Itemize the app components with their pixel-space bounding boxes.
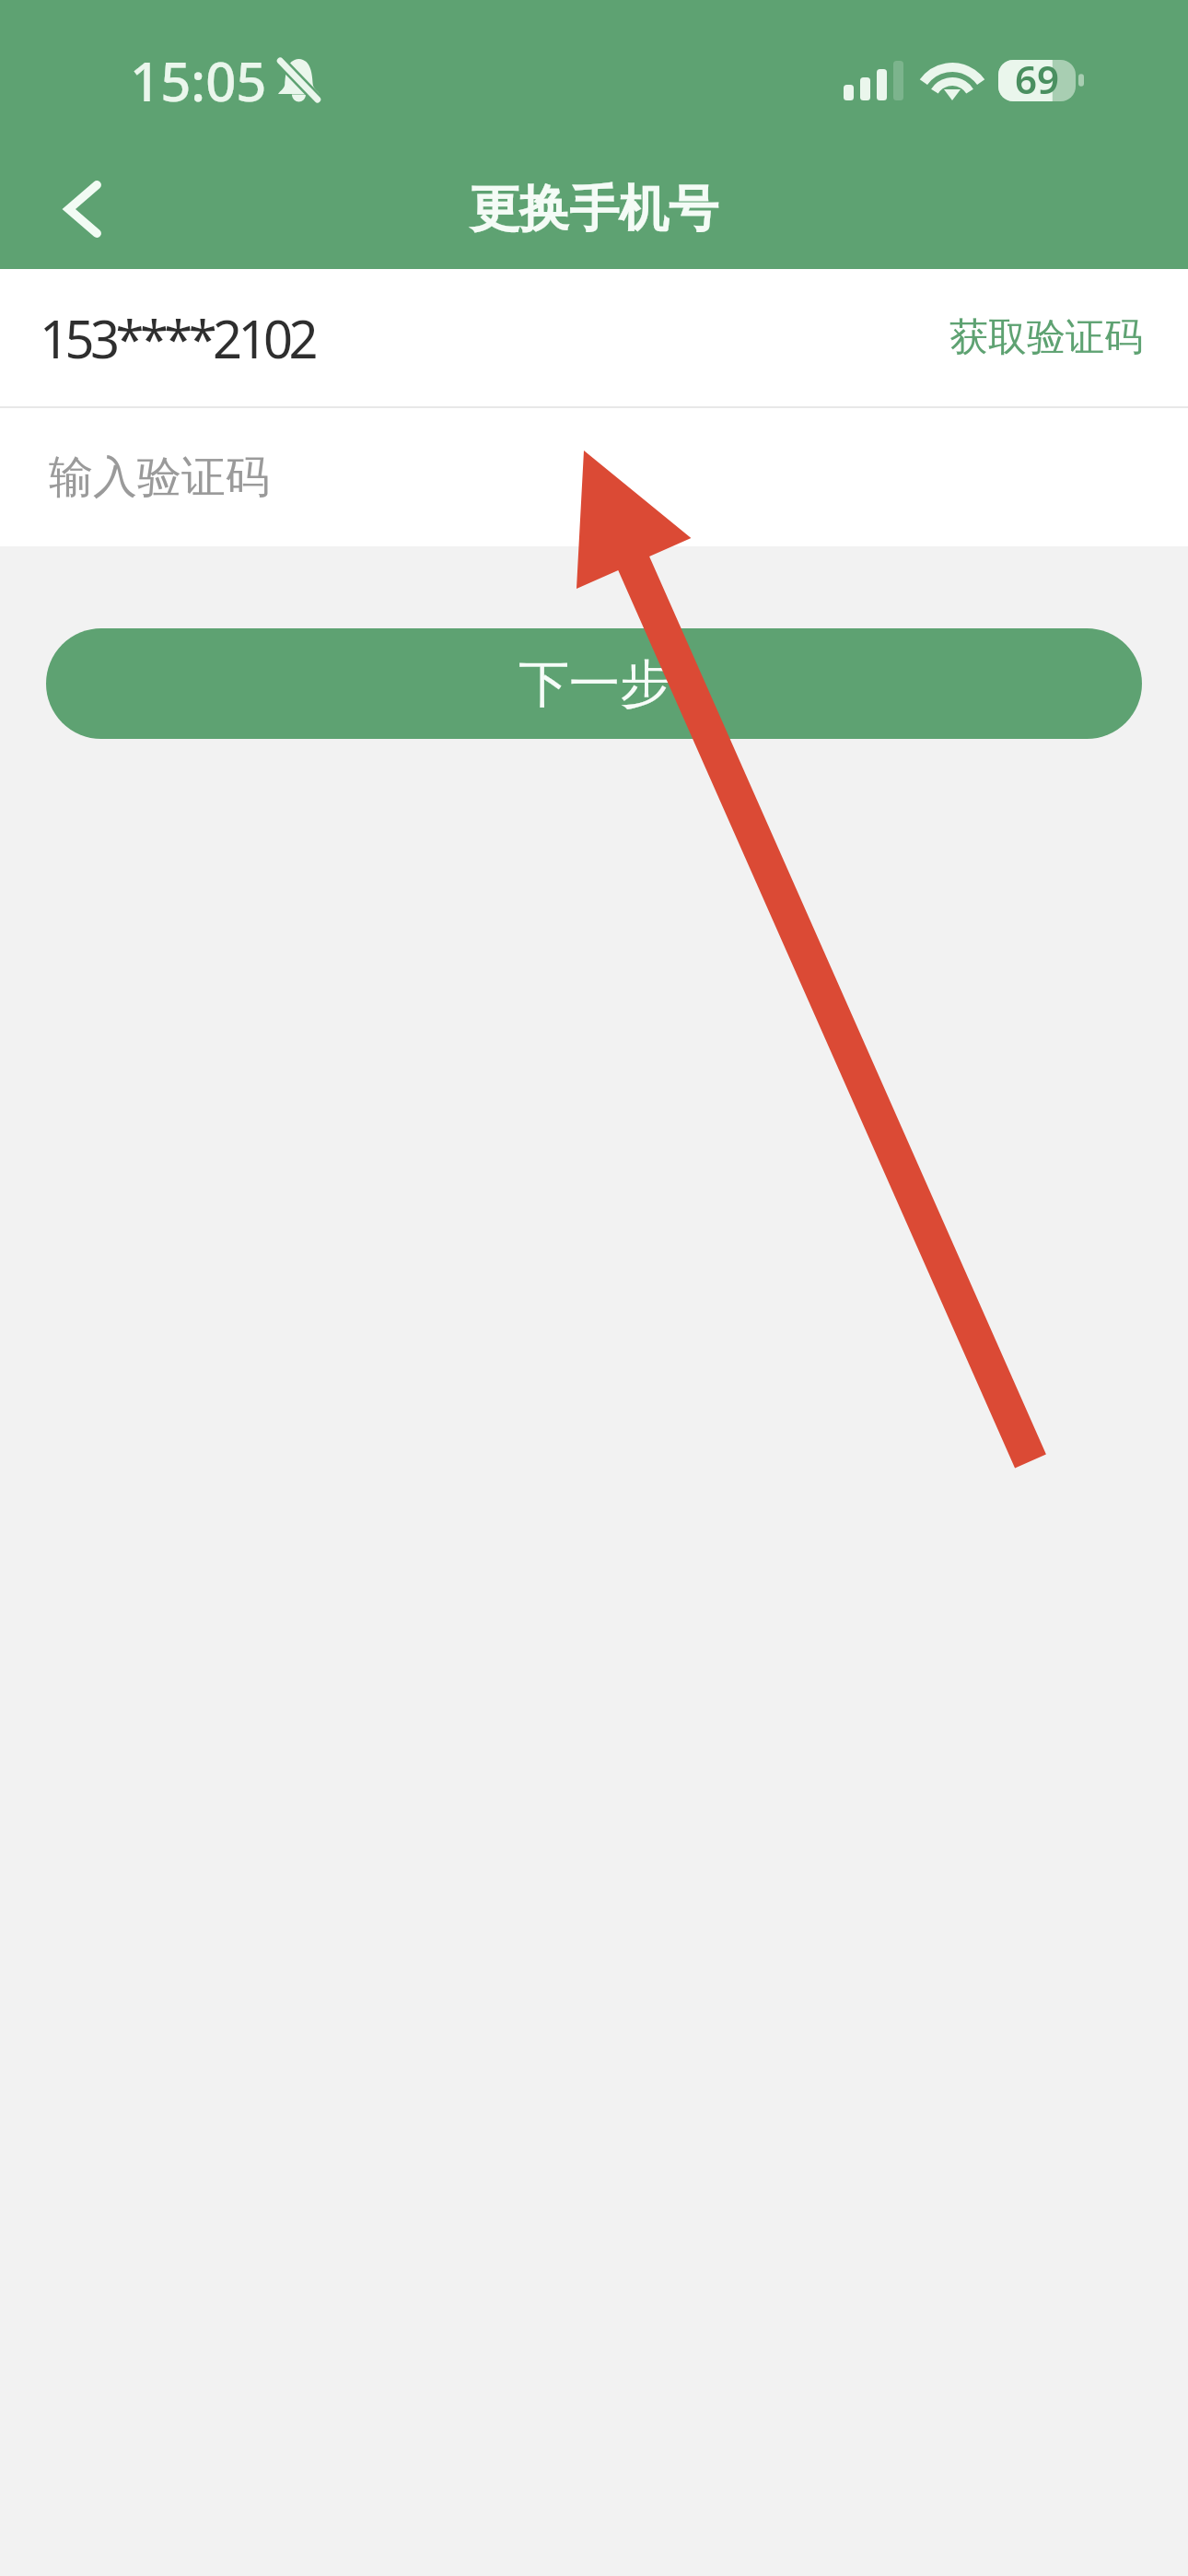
staticText: 获取验证码 (949, 313, 1143, 362)
staticText: 下一步 (518, 652, 670, 716)
staticText: 输入验证码 (49, 450, 270, 505)
button[interactable]: 获取验证码 (913, 269, 1188, 406)
staticText: 153****2102 (40, 303, 315, 373)
staticText: 更换手机号 (470, 178, 718, 240)
staticText: 69 (1015, 53, 1060, 105)
button[interactable]: Back (37, 163, 129, 255)
staticText: 15:05 (130, 44, 267, 117)
button[interactable]: 输入验证码 (0, 408, 1188, 546)
button[interactable]: 下一步 (46, 628, 1142, 739)
